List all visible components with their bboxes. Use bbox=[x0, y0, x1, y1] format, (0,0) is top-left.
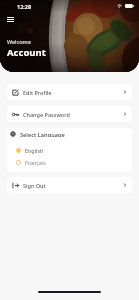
button[interactable]: Change Password bbox=[7, 106, 132, 122]
button[interactable]: Sign Out bbox=[7, 177, 132, 193]
staticText: Select Language bbox=[20, 131, 65, 137]
staticText: English bbox=[25, 147, 44, 154]
staticText: Account bbox=[7, 46, 46, 59]
button[interactable]: Français bbox=[7, 158, 132, 166]
staticText: Français bbox=[25, 159, 46, 166]
button[interactable]: Menu bbox=[4, 13, 17, 26]
button[interactable]: Edit Profile bbox=[7, 84, 132, 100]
button[interactable]: English bbox=[7, 146, 132, 154]
staticText: Edit Profile bbox=[23, 89, 52, 96]
staticText: Sign Out bbox=[23, 182, 46, 189]
staticText: Change Password bbox=[23, 111, 70, 118]
staticText: Welcome bbox=[7, 38, 31, 45]
staticText: 12:28 bbox=[17, 3, 32, 10]
